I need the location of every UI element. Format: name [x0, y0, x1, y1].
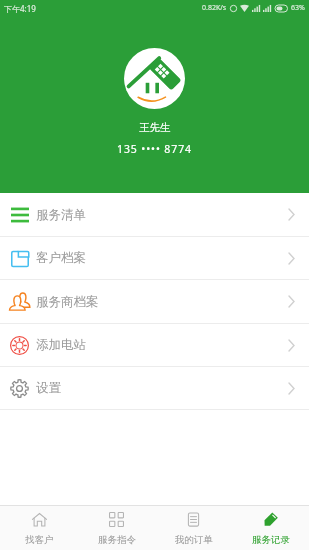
button[interactable]: 添加电站 [0, 324, 309, 366]
staticText: 找客户 [25, 534, 54, 546]
button[interactable]: 我的订单 [155, 506, 232, 550]
staticText: 服务指令 [98, 534, 136, 546]
button[interactable]: 服务清单 [0, 193, 309, 236]
staticText: 设置 [36, 380, 61, 396]
staticText: 添加电站 [36, 337, 86, 353]
staticText: 服务记录 [252, 534, 290, 546]
button[interactable]: 服务指令 [78, 506, 155, 550]
button[interactable]: 服务记录 [232, 506, 309, 550]
staticText: 下午4:19 [4, 3, 36, 14]
button[interactable]: 设置 [0, 367, 309, 409]
button[interactable]: 客户档案 [0, 237, 309, 279]
staticText: 0.82K/s [202, 3, 227, 13]
staticText: 63% [291, 3, 305, 13]
staticText: 王先生 [139, 121, 171, 134]
staticText: 客户档案 [36, 250, 86, 266]
button[interactable]: 服务商档案 [0, 280, 309, 323]
staticText: 服务商档案 [36, 294, 99, 310]
staticText: 135 •••• 8774 [117, 142, 192, 156]
button[interactable]: 找客户 [0, 506, 78, 550]
staticText: 我的订单 [175, 534, 213, 546]
staticText: 服务清单 [36, 207, 86, 223]
